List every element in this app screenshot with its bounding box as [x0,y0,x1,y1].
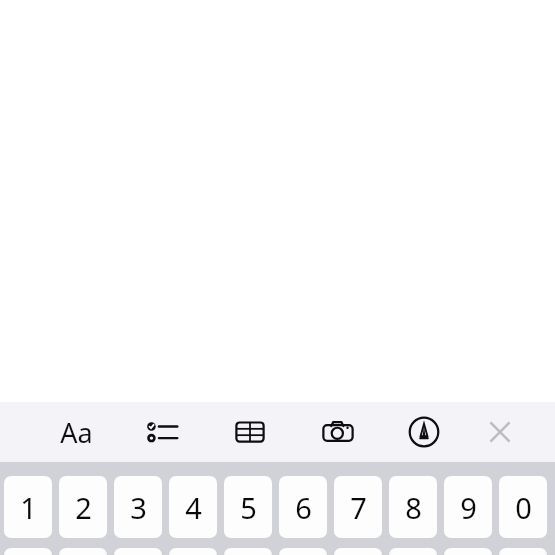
button[interactable]: 4 [169,548,217,555]
button[interactable]: Markup [401,409,447,455]
staticText: 1 [20,488,37,527]
button[interactable]: Aa [49,413,103,451]
button[interactable]: 9 [444,548,492,555]
button[interactable]: Insert table [227,409,273,455]
button[interactable]: 5 [224,548,272,555]
button[interactable]: 7 [334,548,382,555]
staticText: 3 [130,488,147,527]
button[interactable]: 1 [4,548,52,555]
staticText: 2 [75,488,92,527]
staticText: 5 [240,488,257,527]
staticText: 0 [515,488,532,527]
button[interactable]: 6 [279,548,327,555]
button[interactable]: Checklist [140,409,186,455]
button[interactable]: 0 [499,476,547,538]
button[interactable]: 3 [114,548,162,555]
button[interactable]: 5 [224,476,272,538]
staticText: 6 [295,488,312,527]
button[interactable]: 4 [169,476,217,538]
button[interactable]: 0 [499,548,547,555]
button[interactable]: Camera [315,409,361,455]
button[interactable]: 9 [444,476,492,538]
button[interactable]: 2 [59,548,107,555]
button[interactable]: 7 [334,476,382,538]
staticText: 7 [350,488,367,527]
button[interactable]: 8 [389,548,437,555]
staticText: 4 [185,488,202,527]
button[interactable]: Close keyboard [477,409,523,455]
button[interactable]: 2 [59,476,107,538]
staticText: 9 [460,488,477,527]
button[interactable]: 1 [4,476,52,538]
button[interactable]: 8 [389,476,437,538]
staticText: Aa [60,414,93,451]
button[interactable]: 3 [114,476,162,538]
button[interactable]: 6 [279,476,327,538]
staticText: 8 [405,488,422,527]
